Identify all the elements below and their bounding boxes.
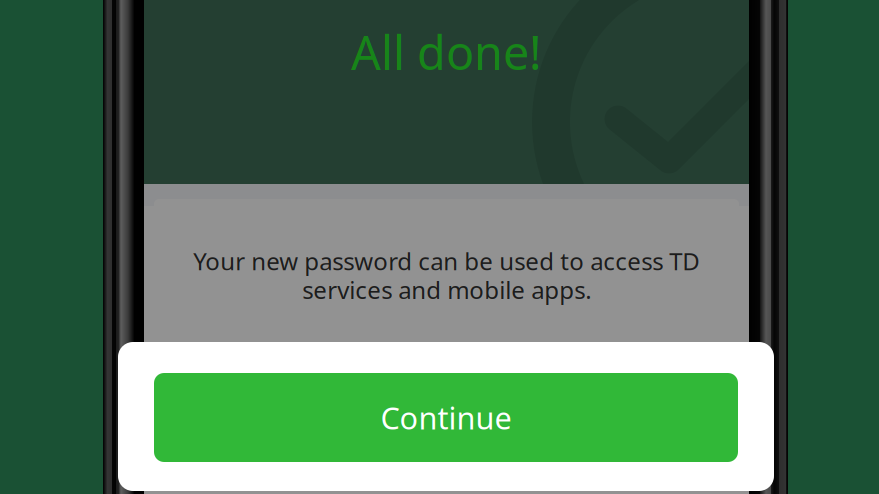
staticText: Your new password can be used to access … <box>193 245 700 306</box>
staticText: All done! <box>351 21 542 83</box>
button[interactable]: Continue <box>154 373 738 462</box>
staticText: Continue <box>380 397 511 438</box>
